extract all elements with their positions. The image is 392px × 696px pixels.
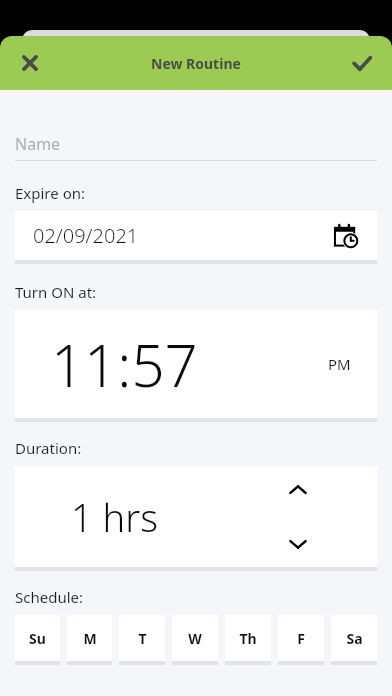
staticText: Name: [15, 133, 61, 155]
staticText: 11:57: [51, 325, 198, 404]
staticText: New Routine: [151, 54, 241, 73]
button[interactable]: Close: [10, 43, 50, 83]
staticText: Th: [239, 629, 257, 648]
staticText: Schedule:: [15, 587, 84, 607]
button[interactable]: M: [67, 615, 112, 661]
button[interactable]: Increase duration: [281, 473, 315, 507]
button[interactable]: Name: [15, 128, 377, 160]
staticText: Sa: [346, 629, 363, 648]
staticText: T: [138, 629, 147, 648]
staticText: M: [83, 629, 97, 648]
other: Pick date: [333, 223, 359, 249]
staticText: Expire on:: [15, 183, 85, 203]
button[interactable]: 02/09/2021: [15, 211, 377, 260]
staticText: Turn ON at:: [15, 282, 97, 302]
staticText: W: [188, 629, 202, 648]
button[interactable]: F: [278, 615, 324, 661]
button[interactable]: T: [119, 615, 165, 661]
staticText: F: [297, 629, 305, 648]
button[interactable]: Su: [15, 615, 60, 661]
staticText: 1 hrs: [71, 491, 158, 543]
button[interactable]: 11:57: [15, 310, 377, 418]
button[interactable]: Decrease duration: [281, 527, 315, 561]
button[interactable]: W: [172, 615, 218, 661]
button[interactable]: Save: [342, 43, 382, 83]
button[interactable]: Sa: [331, 615, 377, 661]
staticText: Duration:: [15, 438, 82, 458]
button[interactable]: Th: [225, 615, 271, 661]
staticText: Su: [29, 629, 46, 648]
staticText: 02/09/2021: [33, 222, 139, 249]
staticText: PM: [328, 354, 351, 374]
